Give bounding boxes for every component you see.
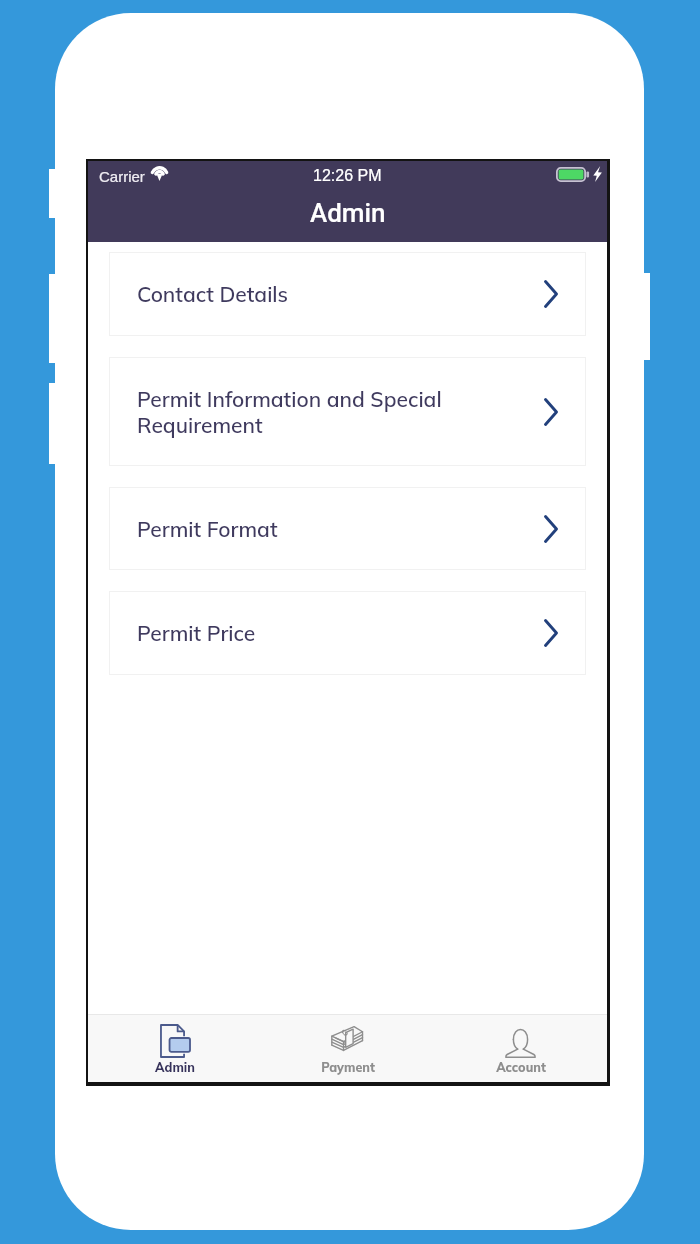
button[interactable]: Permit Information and Special Requireme…: [109, 357, 586, 466]
staticText: Account: [496, 1059, 546, 1075]
button[interactable]: Account: [434, 1015, 607, 1082]
staticText: Permit Price: [137, 620, 457, 646]
button[interactable]: Permit Format: [109, 487, 586, 570]
other: Account: [504, 1023, 537, 1056]
staticText: Permit Information and Special Requireme…: [137, 386, 467, 438]
staticText: Admin: [310, 198, 386, 228]
staticText: Carrier: [99, 168, 145, 185]
other: Payment: [331, 1023, 364, 1056]
staticText: 12:26 PM: [313, 167, 382, 185]
other: Admin: [158, 1023, 191, 1056]
button[interactable]: Contact Details: [109, 252, 586, 336]
staticText: Admin: [155, 1059, 195, 1075]
staticText: Contact Details: [137, 281, 457, 307]
button[interactable]: Permit Price: [109, 591, 586, 675]
staticText: Permit Format: [137, 516, 457, 542]
button[interactable]: Admin: [88, 1015, 261, 1082]
button[interactable]: Payment: [261, 1015, 434, 1082]
staticText: Payment: [321, 1059, 375, 1075]
